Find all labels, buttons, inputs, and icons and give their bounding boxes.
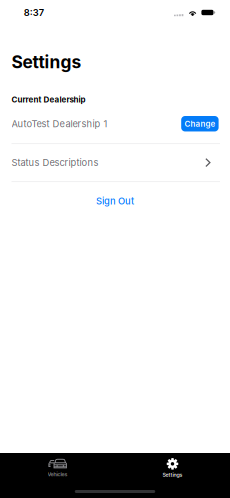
staticText: Settings [11,52,81,72]
staticText: Change [184,119,215,128]
button[interactable]: Change [181,116,219,131]
staticText: AutoTest Dealership 1 [11,118,107,129]
staticText: 8:37 [24,7,44,18]
staticText: Settings [162,472,182,478]
staticText: Sign Out [96,196,134,207]
button[interactable]: Sign Out [0,182,230,219]
button[interactable]: Vehicles [0,457,115,479]
staticText: Current Dealership [11,95,85,104]
button[interactable]: Status Descriptions [0,144,230,181]
staticText: Status Descriptions [11,157,98,168]
button[interactable]: Settings [115,457,230,479]
staticText: Vehicles [47,471,67,477]
